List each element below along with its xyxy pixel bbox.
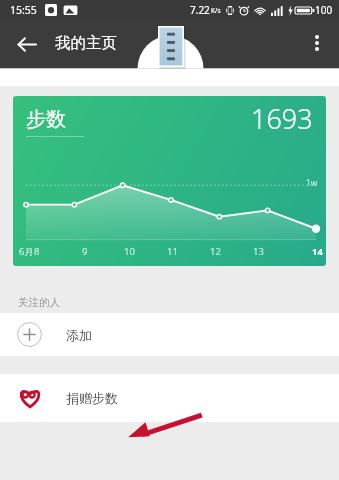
staticText: 10 [124,245,135,258]
staticText: 13 [253,245,264,258]
staticText: 14 [312,245,323,258]
staticText: 15:55 [10,3,37,17]
button[interactable]: 步数 [13,96,326,266]
staticText: 添加 [66,327,92,343]
button[interactable]: More options [299,25,335,61]
staticText: 100 [315,3,333,17]
staticText: 关注的人 [18,296,60,309]
staticText: 7.22 [190,3,210,17]
staticText: 捐赠步数 [66,390,118,406]
button[interactable]: 添加 [0,313,339,356]
staticText: 11 [167,245,178,258]
staticText: K/s [211,6,221,15]
button[interactable]: Profile image [158,26,184,67]
staticText: 12 [210,245,221,258]
button[interactable]: 捐赠步数 [0,374,339,422]
staticText: 9 [82,245,88,258]
staticText: 步数 [26,107,66,132]
staticText: 6月8 [19,245,40,258]
staticText: 我的主页 [55,33,117,53]
button[interactable]: Back [8,26,44,62]
staticText: 1w [306,177,318,189]
staticText: 1693 [251,100,313,137]
